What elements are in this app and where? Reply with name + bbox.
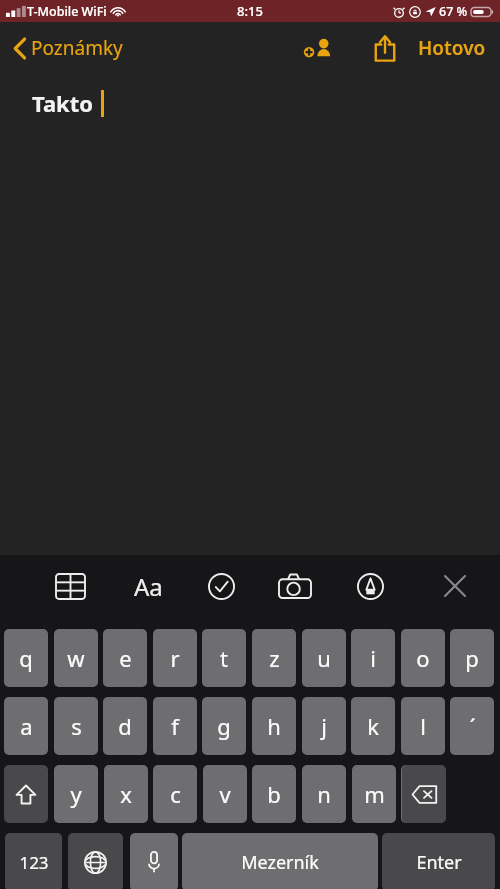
staticText: w (67, 643, 85, 673)
staticText: ´ (469, 711, 476, 741)
staticText: Mezerník (241, 850, 319, 875)
button[interactable]: Poznámky (0, 29, 133, 67)
button[interactable]: Shift (4, 765, 48, 823)
button[interactable]: r (153, 629, 197, 687)
staticText: s (71, 711, 82, 741)
button[interactable]: Change keyboard (68, 833, 123, 889)
button[interactable]: e (103, 629, 147, 687)
button[interactable]: g (202, 697, 246, 755)
button[interactable]: Hotovo (404, 25, 500, 71)
staticText: a (20, 711, 33, 741)
button[interactable]: Toolbar action (46, 555, 94, 617)
button[interactable]: t (202, 629, 246, 687)
button[interactable]: z (252, 629, 296, 687)
button[interactable]: d (103, 697, 147, 755)
staticText: i (370, 643, 376, 673)
button[interactable]: a (4, 697, 48, 755)
staticText: o (416, 643, 430, 673)
button[interactable]: x (104, 765, 148, 823)
button[interactable]: l (401, 697, 445, 755)
staticText: z (269, 643, 280, 673)
staticText: q (19, 643, 33, 673)
staticText: v (219, 779, 231, 809)
staticText: g (217, 711, 231, 741)
staticText: Enter (416, 850, 462, 875)
button[interactable]: n (302, 765, 346, 823)
button[interactable]: i (351, 629, 395, 687)
staticText: k (367, 711, 379, 741)
staticText: b (267, 779, 281, 809)
staticText: c (170, 779, 181, 809)
staticText: ˇ (419, 781, 427, 807)
staticText: m (364, 779, 385, 809)
button[interactable]: Toolbar action (197, 555, 245, 617)
button[interactable]: ˇ (401, 765, 445, 823)
button[interactable]: c (153, 765, 197, 823)
button[interactable]: w (54, 629, 98, 687)
staticText: j (321, 711, 327, 741)
staticText: 8:15 (237, 2, 263, 20)
button[interactable]: ´ (450, 697, 494, 755)
button[interactable]: Add people (294, 27, 342, 69)
button[interactable]: Mezerník (182, 833, 378, 889)
button[interactable]: k (351, 697, 395, 755)
button[interactable]: Toolbar action (431, 555, 479, 617)
staticText: 123 (19, 851, 49, 874)
button[interactable]: h (252, 697, 296, 755)
staticText: r (170, 643, 180, 673)
staticText: p (465, 643, 479, 673)
button[interactable]: y (54, 765, 98, 823)
staticText: T-Mobile WiFi (27, 3, 107, 20)
staticText: 67 % (439, 3, 468, 20)
button[interactable]: q (4, 629, 48, 687)
button[interactable]: Toolbar action (124, 555, 172, 617)
button[interactable]: Dictate (130, 833, 178, 889)
button[interactable]: Toolbar action (346, 555, 394, 617)
button[interactable]: f (153, 697, 197, 755)
staticText: Hotovo (418, 35, 486, 61)
staticText: d (118, 711, 132, 741)
button[interactable]: b (252, 765, 296, 823)
button[interactable]: p (450, 629, 494, 687)
staticText: y (70, 779, 82, 809)
staticText: n (317, 779, 331, 809)
staticText: f (171, 711, 179, 741)
staticText: Takto (32, 88, 94, 118)
staticText: Aa (134, 570, 163, 603)
staticText: h (267, 711, 281, 741)
button[interactable]: u (302, 629, 346, 687)
button[interactable]: Backspace (402, 765, 446, 823)
staticText: Poznámky (31, 35, 123, 61)
button[interactable]: j (302, 697, 346, 755)
staticText: u (317, 643, 331, 673)
button[interactable]: v (203, 765, 247, 823)
button[interactable]: s (54, 697, 98, 755)
button[interactable]: o (401, 629, 445, 687)
staticText: x (120, 779, 132, 809)
staticText: l (420, 711, 426, 741)
staticText: e (119, 643, 132, 673)
button[interactable]: Share (366, 27, 404, 70)
button[interactable]: Enter (382, 833, 495, 889)
button[interactable]: m (352, 765, 396, 823)
button[interactable]: 123 (5, 833, 62, 889)
button[interactable]: Toolbar action (271, 555, 319, 617)
staticText: t (220, 643, 228, 673)
